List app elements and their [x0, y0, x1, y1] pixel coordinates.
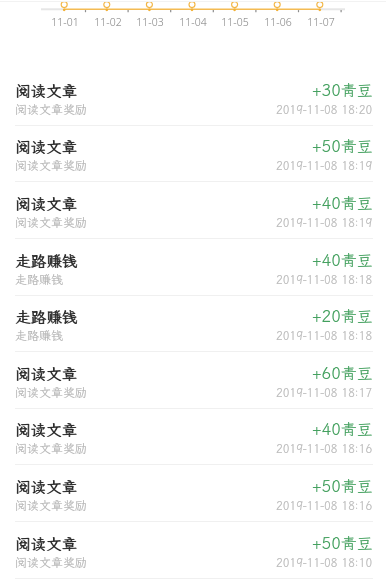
staticText: 走路赚钱	[15, 251, 78, 271]
staticText: 阅读文章奖励	[15, 441, 88, 457]
button[interactable]: 阅读文章	[0, 69, 386, 126]
staticText: 阅读文章	[15, 137, 78, 157]
staticText: 11-05	[221, 15, 249, 29]
staticText: 阅读文章奖励	[15, 498, 88, 514]
staticText: 阅读文章	[15, 194, 78, 214]
button[interactable]: 走路赚钱	[0, 295, 386, 352]
staticText: 11-01	[51, 15, 79, 29]
button[interactable]: 阅读文章	[0, 352, 386, 409]
staticText: 11-04	[179, 15, 207, 29]
staticText: 阅读文章	[15, 477, 78, 497]
staticText: 11-06	[264, 15, 292, 29]
button[interactable]: 阅读文章	[0, 125, 386, 182]
staticText: +50青豆	[312, 135, 373, 156]
staticText: 阅读文章奖励	[15, 215, 88, 231]
staticText: 11-02	[94, 15, 122, 29]
button[interactable]: 阅读文章	[0, 408, 386, 465]
staticText: 2019-11-08 18:18	[276, 272, 373, 287]
staticText: 阅读文章奖励	[15, 158, 88, 174]
staticText: 阅读文章奖励	[15, 385, 88, 401]
staticText: 2019-11-08 18:18	[276, 328, 373, 343]
button[interactable]: 走路赚钱	[0, 239, 386, 296]
button[interactable]: 阅读文章	[0, 522, 386, 579]
staticText: 2019-11-08 18:16	[276, 498, 373, 513]
staticText: 走路赚钱	[15, 328, 64, 344]
staticText: +40青豆	[312, 192, 373, 213]
staticText: 阅读文章奖励	[15, 555, 88, 571]
staticText: 2019-11-08 18:16	[276, 441, 373, 456]
staticText: +50青豆	[312, 532, 373, 553]
staticText: 2019-11-08 18:20	[276, 102, 373, 117]
staticText: 2019-11-08 18:19	[276, 215, 373, 230]
staticText: +50青豆	[312, 475, 373, 496]
staticText: 阅读文章	[15, 534, 78, 554]
staticText: 阅读文章	[15, 81, 78, 101]
staticText: +60青豆	[312, 362, 373, 383]
staticText: 阅读文章	[15, 364, 78, 384]
staticText: +30青豆	[312, 79, 373, 100]
staticText: +20青豆	[312, 305, 373, 326]
staticText: 11-03	[136, 15, 164, 29]
staticText: 2019-11-08 18:10	[276, 555, 373, 570]
staticText: 阅读文章	[15, 420, 78, 440]
staticText: 2019-11-08 18:17	[276, 385, 373, 400]
button[interactable]: 阅读文章	[0, 182, 386, 239]
staticText: 2019-11-08 18:19	[276, 158, 373, 173]
staticText: 阅读文章奖励	[15, 102, 88, 118]
button[interactable]: 阅读文章	[0, 465, 386, 522]
staticText: 走路赚钱	[15, 272, 64, 288]
staticText: 11-07	[307, 15, 335, 29]
staticText: +40青豆	[312, 249, 373, 270]
staticText: 走路赚钱	[15, 307, 78, 327]
staticText: +40青豆	[312, 418, 373, 439]
